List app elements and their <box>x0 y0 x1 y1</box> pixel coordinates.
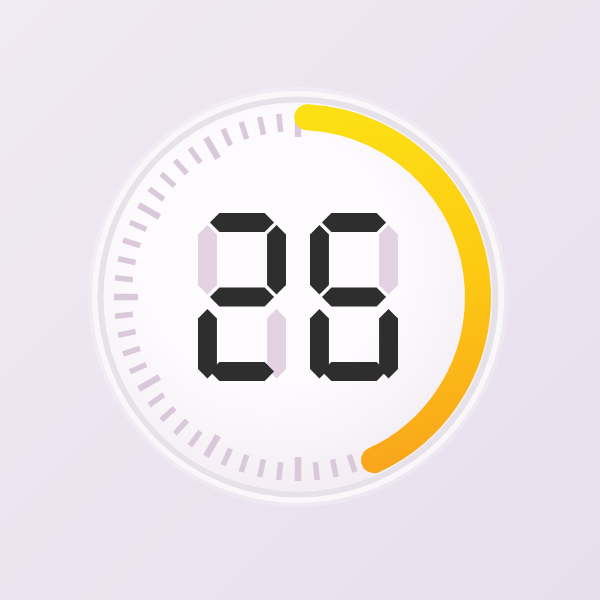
button[interactable]: Timer 26 minutes remaining <box>0 0 600 600</box>
